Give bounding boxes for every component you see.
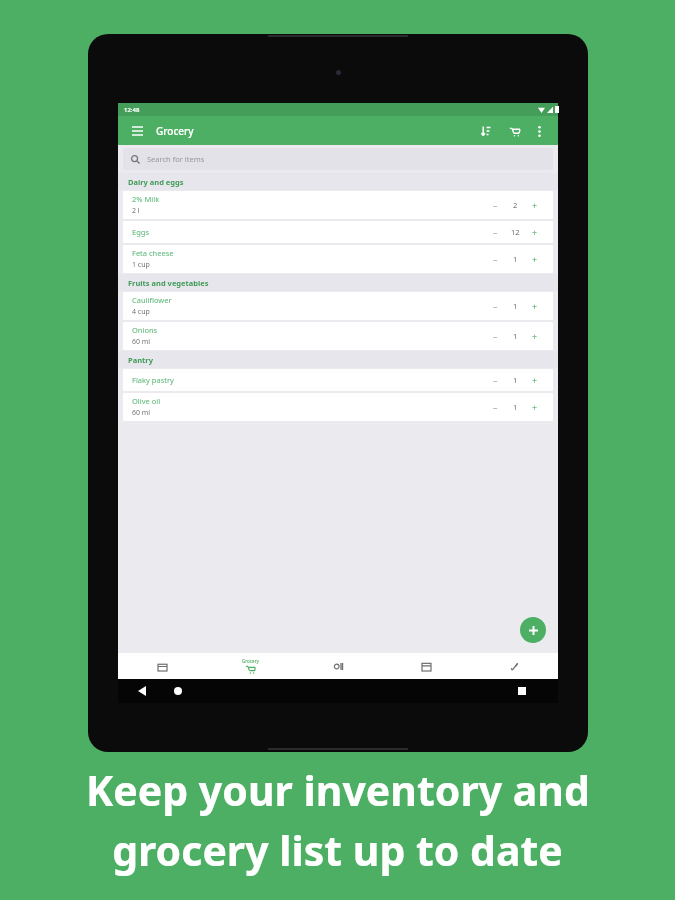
- button[interactable]: More options: [530, 122, 548, 140]
- staticText: +: [532, 401, 538, 413]
- button[interactable]: Onions: [123, 322, 553, 350]
- button[interactable]: Cauliflower: [123, 292, 553, 320]
- staticText: –: [493, 199, 498, 211]
- button[interactable]: Increase quantity: [526, 297, 544, 315]
- button[interactable]: Decrease quantity: [486, 371, 504, 389]
- staticText: Onions: [132, 325, 158, 335]
- staticText: Flaky pastry: [132, 375, 174, 385]
- button[interactable]: Decrease quantity: [486, 297, 504, 315]
- button[interactable]: Increase quantity: [526, 223, 544, 241]
- button[interactable]: [118, 653, 206, 679]
- button[interactable]: [382, 653, 470, 679]
- button[interactable]: Increase quantity: [526, 398, 544, 416]
- staticText: –: [493, 374, 498, 386]
- staticText: +: [532, 374, 538, 386]
- button[interactable]: [470, 653, 558, 679]
- staticText: 1: [513, 375, 518, 385]
- button[interactable]: Increase quantity: [526, 327, 544, 345]
- button[interactable]: Increase quantity: [526, 371, 544, 389]
- staticText: 1: [513, 254, 518, 264]
- button[interactable]: 2% Milk: [123, 191, 553, 219]
- staticText: Feta cheese: [132, 248, 174, 258]
- button[interactable]: Sort: [476, 121, 496, 141]
- staticText: Grocery: [156, 124, 194, 138]
- button[interactable]: Increase quantity: [526, 196, 544, 214]
- staticText: 1: [513, 331, 518, 341]
- staticText: 12: [511, 227, 520, 237]
- button[interactable]: Feta cheese: [123, 245, 553, 273]
- button[interactable]: Search for items: [123, 148, 553, 170]
- staticText: –: [493, 401, 498, 413]
- staticText: 2 l: [132, 206, 140, 216]
- staticText: +: [532, 226, 538, 238]
- staticText: 1: [513, 301, 518, 311]
- button[interactable]: Flaky pastry: [123, 369, 553, 391]
- button[interactable]: [294, 653, 382, 679]
- button[interactable]: Open navigation menu: [128, 122, 146, 140]
- button[interactable]: Decrease quantity: [486, 223, 504, 241]
- button[interactable]: Olive oil: [123, 393, 553, 421]
- button[interactable]: Clear cart: [504, 121, 524, 141]
- staticText: Search for items: [147, 154, 205, 164]
- staticText: –: [493, 253, 498, 265]
- staticText: Cauliflower: [132, 295, 172, 305]
- staticText: Dairy and eggs: [128, 177, 184, 187]
- staticText: 2: [513, 200, 518, 210]
- staticText: +: [532, 253, 538, 265]
- button[interactable]: Add item: [520, 617, 546, 643]
- staticText: +: [532, 330, 538, 342]
- staticText: 60 ml: [132, 408, 151, 418]
- staticText: +: [532, 199, 538, 211]
- staticText: Olive oil: [132, 396, 161, 406]
- staticText: 60 ml: [132, 337, 151, 347]
- button[interactable]: Decrease quantity: [486, 196, 504, 214]
- button[interactable]: Grocery: [206, 653, 294, 679]
- staticText: 12:48: [124, 106, 140, 114]
- button[interactable]: Eggs: [123, 221, 553, 243]
- staticText: grocery list up to date: [112, 822, 563, 878]
- button[interactable]: Decrease quantity: [486, 398, 504, 416]
- staticText: 1: [513, 402, 518, 412]
- button[interactable]: Decrease quantity: [486, 327, 504, 345]
- staticText: 2% Milk: [132, 194, 160, 204]
- staticText: Grocery: [242, 658, 259, 664]
- button[interactable]: Increase quantity: [526, 250, 544, 268]
- button[interactable]: Decrease quantity: [486, 250, 504, 268]
- staticText: Fruits and vegetables: [128, 278, 209, 288]
- staticText: Keep your inventory and: [86, 762, 590, 818]
- staticText: –: [493, 300, 498, 312]
- staticText: 4 cup: [132, 307, 150, 317]
- staticText: –: [493, 330, 498, 342]
- staticText: +: [532, 300, 538, 312]
- staticText: 1 cup: [132, 260, 150, 270]
- staticText: Eggs: [132, 227, 149, 237]
- staticText: –: [493, 226, 498, 238]
- staticText: Pantry: [128, 355, 153, 365]
